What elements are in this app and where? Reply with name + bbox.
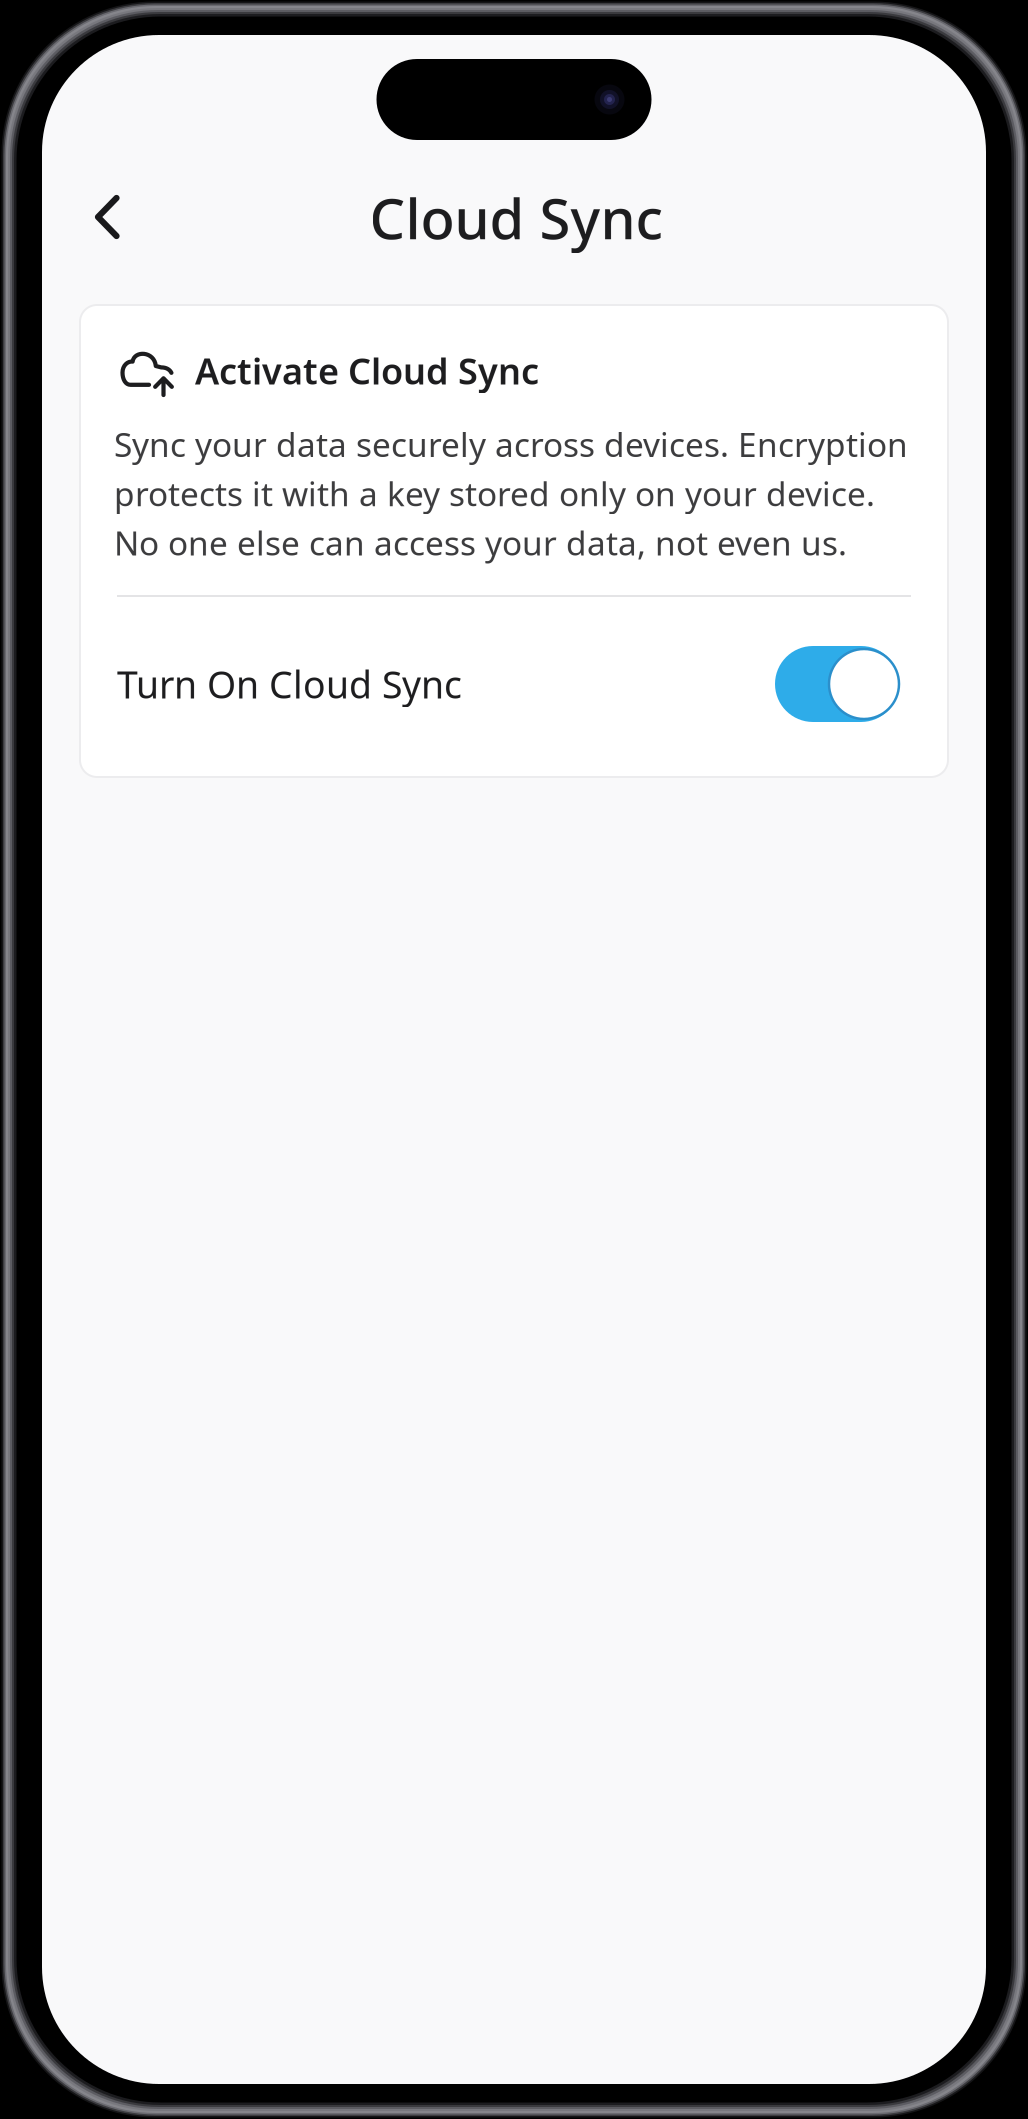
button[interactable]: Back: [59, 169, 155, 265]
staticText: Cloud Sync: [369, 180, 662, 255]
staticText: Turn On Cloud Sync: [117, 659, 462, 709]
staticText: Activate Cloud Sync: [195, 347, 539, 394]
button[interactable]: Turn On Cloud Sync: [117, 638, 899, 730]
staticText: Sync your data securely across devices. …: [114, 422, 908, 565]
button[interactable]: Activate Cloud Sync: [120, 344, 551, 397]
